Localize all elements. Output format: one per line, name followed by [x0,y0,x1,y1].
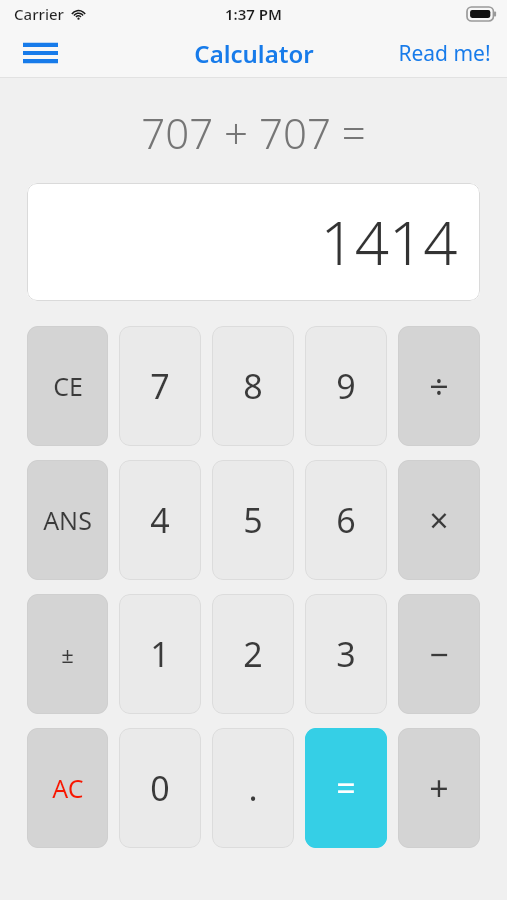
button[interactable]: AC [27,728,108,848]
staticText: 0 [150,765,170,811]
staticText: = [336,765,356,811]
button[interactable]: ÷ [398,326,480,446]
button[interactable]: − [398,594,480,714]
button[interactable]: 3 [305,594,387,714]
staticText: + [429,765,449,811]
button[interactable]: 2 [212,594,294,714]
staticText: ± [61,639,74,669]
staticText: 8 [243,363,263,409]
staticText: CE [53,369,83,403]
staticText: 2 [243,631,263,677]
staticText: Calculator [194,37,314,70]
button[interactable]: CE [27,326,108,446]
button[interactable]: 4 [119,460,201,580]
staticText: 6 [336,497,356,543]
staticText: . [248,765,258,811]
button[interactable]: 1414 [27,183,480,301]
staticText: 1 [150,631,170,677]
button[interactable]: 5 [212,460,294,580]
button[interactable]: ± [27,594,108,714]
button[interactable]: 7 [119,326,201,446]
staticText: 707 + 707 = [141,104,366,161]
staticText: 4 [150,497,170,543]
staticText: − [429,631,449,677]
button[interactable]: 8 [212,326,294,446]
staticText: 5 [243,497,263,543]
button[interactable]: × [398,460,480,580]
button[interactable]: 1 [119,594,201,714]
button[interactable]: 0 [119,728,201,848]
staticText: Carrier [14,4,64,24]
button[interactable]: 9 [305,326,387,446]
button[interactable]: ANS [27,460,108,580]
button[interactable]: . [212,728,294,848]
button[interactable]: Menu [18,35,62,71]
staticText: 3 [336,631,356,677]
button[interactable]: Calculator [194,37,314,70]
staticText: 1414 [320,201,458,283]
staticText: × [429,497,449,543]
staticText: 9 [336,363,356,409]
staticText: AC [52,771,84,805]
staticText: ANS [43,503,92,537]
button[interactable]: 6 [305,460,387,580]
button[interactable]: = [305,728,387,848]
button[interactable]: Read me! [398,39,491,68]
button[interactable]: + [398,728,480,848]
staticText: 1:37 PM [225,4,282,24]
staticText: 7 [150,363,170,409]
staticText: ÷ [429,363,449,409]
staticText: Read me! [398,39,491,68]
